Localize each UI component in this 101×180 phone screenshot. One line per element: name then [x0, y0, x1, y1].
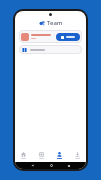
button[interactable]: Home	[15, 149, 32, 162]
button[interactable]: Play	[19, 30, 82, 43]
button[interactable]: Play	[56, 33, 80, 41]
button[interactable]: Downloads	[68, 149, 86, 162]
staticText: Team	[47, 19, 63, 27]
button[interactable]: Browse	[32, 149, 50, 162]
button[interactable]	[19, 45, 82, 54]
button[interactable]: Profile	[50, 149, 68, 162]
